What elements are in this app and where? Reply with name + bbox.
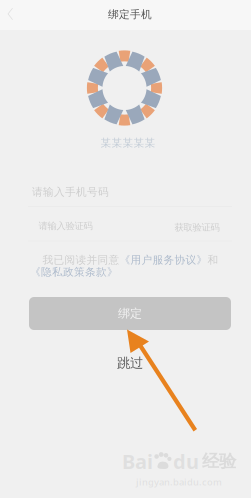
staticText: 请输入验证码	[38, 220, 92, 232]
button[interactable]: 绑定	[29, 297, 231, 330]
staticText: 跳过	[117, 355, 143, 371]
staticText: 《用户服务协议》	[119, 253, 207, 266]
staticText: 绑定手机	[108, 8, 152, 21]
button[interactable]: 获取验证码	[171, 218, 222, 237]
button[interactable]: 《用户服务协议》	[119, 253, 207, 266]
staticText: 经验	[202, 451, 236, 472]
staticText: 我已阅读并同意	[42, 253, 119, 266]
staticText: 绑定	[118, 306, 142, 321]
staticText: 某某某某某	[100, 136, 155, 149]
staticText: jingyan.baidu.com	[136, 476, 222, 488]
staticText: Bai	[122, 448, 153, 475]
staticText: 请输入手机号码	[32, 185, 109, 198]
button[interactable]: 跳过	[111, 351, 149, 375]
staticText: 获取验证码	[174, 222, 219, 233]
staticText: 《隐私政策条款》	[30, 265, 118, 278]
button[interactable]: 《隐私政策条款》	[30, 265, 118, 278]
staticText: du	[173, 448, 199, 475]
staticText: 和	[207, 253, 218, 266]
